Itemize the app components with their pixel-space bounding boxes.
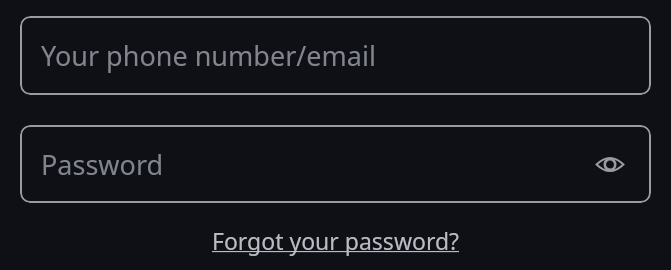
staticText: Your phone number/email [41, 37, 376, 74]
button[interactable]: Password [20, 125, 651, 203]
button[interactable]: Show password [588, 142, 632, 186]
staticText: Password [41, 146, 164, 183]
staticText: Forgot your password? [212, 225, 460, 256]
button[interactable]: Your phone number/email [20, 16, 651, 95]
button[interactable]: Forgot your password? [212, 225, 460, 256]
